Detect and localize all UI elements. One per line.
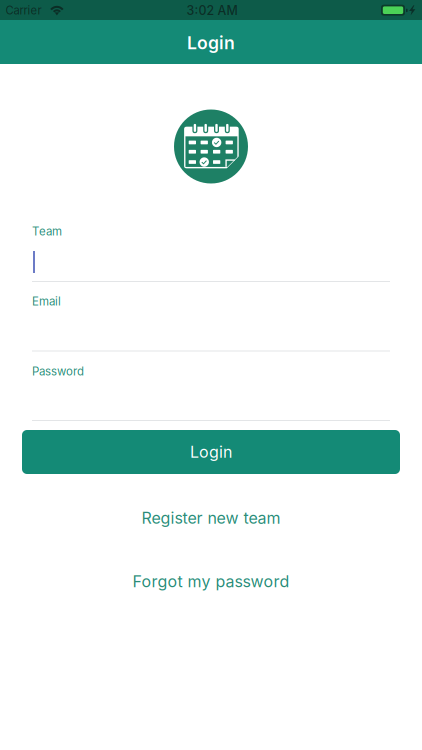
staticText: Login: [187, 32, 235, 53]
button[interactable]: Register new team: [22, 505, 400, 531]
staticText: Email: [32, 294, 61, 308]
staticText: Login: [190, 442, 232, 462]
staticText: Register new team: [141, 508, 280, 528]
staticText: Team: [32, 224, 62, 238]
button[interactable]: Forgot my password: [22, 568, 400, 594]
button[interactable]: Login: [22, 430, 400, 474]
staticText: Password: [32, 364, 84, 378]
staticText: Carrier: [5, 4, 41, 17]
staticText: Forgot my password: [132, 572, 289, 591]
staticText: 3:02 AM: [186, 3, 237, 18]
